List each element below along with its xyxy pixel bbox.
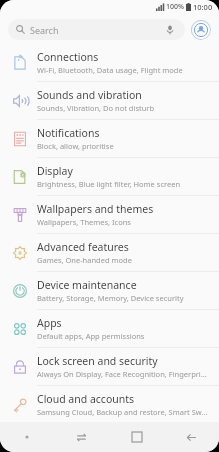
staticText: Connections — [37, 50, 99, 64]
staticText: Display — [37, 164, 73, 178]
staticText: 100% — [166, 2, 184, 12]
staticText: Apps — [37, 316, 62, 330]
button[interactable]: Account — [190, 19, 211, 40]
staticText: Sounds, Vibration, Do not disturb — [37, 103, 155, 113]
button[interactable]: Wallpapers and themes — [0, 196, 219, 233]
button[interactable]: Back — [164, 422, 219, 452]
staticText: Samsung Cloud, Backup and restore, Smart… — [37, 407, 208, 417]
button[interactable]: Home — [109, 422, 164, 452]
button[interactable]: Notifications — [0, 120, 219, 157]
staticText: Wallpapers and themes — [37, 202, 154, 216]
staticText: Lock screen and security — [37, 354, 158, 368]
button[interactable]: Recents — [54, 422, 109, 452]
button[interactable]: Lock screen and security — [0, 348, 219, 385]
staticText: Brightness, Blue light filter, Home scre… — [37, 179, 181, 189]
button[interactable]: Voice search — [163, 23, 177, 37]
staticText: Default apps, App permissions — [37, 331, 145, 341]
staticText: Cloud and accounts — [37, 392, 135, 406]
button[interactable]: Sounds and vibration — [0, 82, 219, 119]
staticText: 10:00 — [193, 2, 213, 12]
staticText: Wallpapers, Themes, Icons — [37, 217, 131, 227]
button[interactable]: Search — [8, 19, 185, 40]
staticText: Battery, Storage, Memory, Device securit… — [37, 293, 184, 303]
button[interactable]: Keyboard indicator — [0, 422, 54, 452]
button[interactable]: Cloud and accounts — [0, 386, 219, 422]
button[interactable]: Advanced features — [0, 234, 219, 271]
staticText: Always On Display, Face Recognition, Fin… — [37, 369, 207, 379]
staticText: Sounds and vibration — [37, 88, 142, 102]
button[interactable]: Connections — [0, 44, 219, 81]
staticText: Search — [30, 24, 59, 36]
button[interactable]: Device maintenance — [0, 272, 219, 309]
staticText: Wi-Fi, Bluetooth, Data usage, Flight mod… — [37, 65, 183, 75]
staticText: Games, One-handed mode — [37, 255, 132, 265]
staticText: Notifications — [37, 126, 100, 140]
button[interactable]: Display — [0, 158, 219, 195]
staticText: Advanced features — [37, 240, 129, 254]
staticText: Block, allow, prioritise — [37, 141, 114, 151]
staticText: Device maintenance — [37, 278, 137, 292]
button[interactable]: Apps — [0, 310, 219, 347]
